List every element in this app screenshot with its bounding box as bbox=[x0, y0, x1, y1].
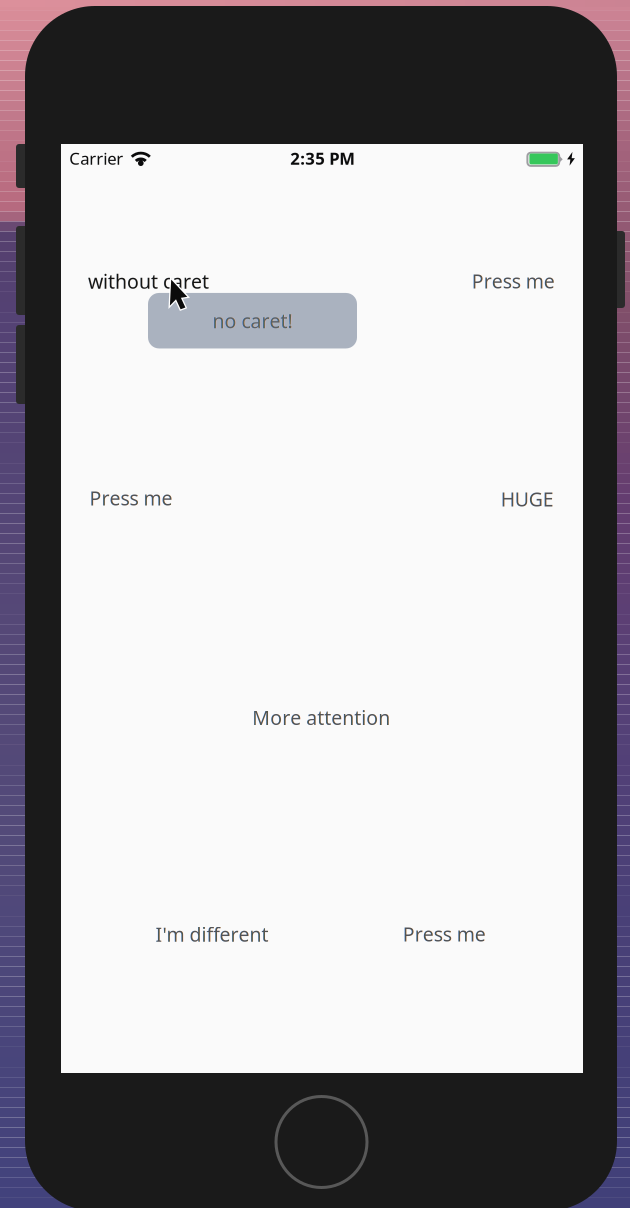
staticText: without caret bbox=[88, 268, 209, 294]
button[interactable]: no caret! bbox=[148, 293, 357, 348]
staticText: Press me bbox=[403, 921, 486, 947]
staticText: HUGE bbox=[501, 486, 554, 512]
button[interactable]: I'm different bbox=[156, 921, 269, 947]
button[interactable]: without caret bbox=[88, 268, 209, 294]
staticText: Press me bbox=[89, 485, 172, 511]
staticText: 2:35 PM bbox=[290, 147, 355, 170]
button[interactable]: Press me bbox=[89, 485, 172, 511]
button[interactable]: Press me bbox=[472, 268, 555, 294]
staticText: Carrier bbox=[69, 147, 123, 170]
staticText: Press me bbox=[472, 268, 555, 294]
staticText: no caret! bbox=[212, 307, 292, 334]
staticText: I'm different bbox=[156, 921, 269, 947]
button[interactable]: More attention bbox=[252, 704, 390, 731]
button[interactable]: HUGE bbox=[501, 486, 554, 512]
staticText: More attention bbox=[252, 704, 390, 731]
button[interactable]: Press me bbox=[403, 921, 486, 947]
